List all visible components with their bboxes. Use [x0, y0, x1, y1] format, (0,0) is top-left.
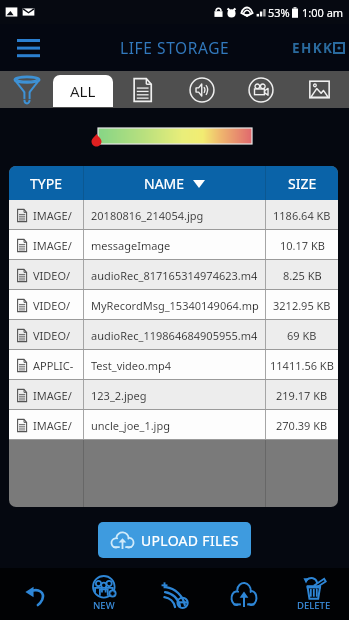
staticText: TYPE [30, 174, 62, 193]
button[interactable]: IMAGE/ [9, 200, 338, 230]
button[interactable]: Connect [139, 568, 209, 620]
staticText: 1186.64 KB [273, 208, 331, 223]
button[interactable]: VIDEO/ [9, 320, 338, 350]
staticText: EHKK [292, 39, 334, 57]
staticText: 10.17 KB [280, 238, 325, 253]
button[interactable]: Delete [279, 568, 349, 620]
button[interactable]: Filter [0, 71, 53, 108]
staticText: UPLOAD FILES [141, 531, 239, 550]
staticText: 270.39 KB [276, 418, 328, 433]
staticText: LIFE STORAGE [120, 37, 230, 58]
staticText: VIDEO/ [33, 298, 71, 313]
staticText: VIDEO/ [33, 328, 71, 343]
staticText: IMAGE/ [33, 208, 72, 223]
button[interactable]: APPLIC- [9, 350, 338, 380]
staticText: 20180816_214054.jpg [91, 208, 204, 223]
button[interactable]: New group [69, 568, 139, 620]
staticText: 219.17 KB [276, 388, 328, 403]
button[interactable]: IMAGE/ [9, 380, 338, 410]
staticText: DELETE [297, 599, 331, 612]
button[interactable]: NAME [84, 166, 265, 200]
staticText: 69 KB [287, 328, 317, 343]
staticText: messageImage [91, 238, 171, 253]
button[interactable]: UPLOAD FILES [98, 522, 251, 558]
staticText: 3212.95 KB [273, 298, 331, 313]
staticText: IMAGE/ [33, 388, 72, 403]
button[interactable]: VIDEO/ [9, 290, 338, 320]
staticText: 11411.56 KB [270, 358, 334, 373]
staticText: IMAGE/ [33, 418, 72, 433]
staticText: 53% [268, 5, 290, 20]
staticText: NAME [144, 174, 185, 193]
button[interactable]: IMAGE/ [9, 410, 338, 440]
staticText: IMAGE/ [33, 238, 72, 253]
button[interactable]: Ehkko logo [292, 39, 344, 57]
staticText: uncle_joe_1.jpg [91, 418, 170, 433]
button[interactable]: Menu [10, 30, 46, 66]
staticText: SIZE [288, 174, 317, 193]
button[interactable]: Audio [172, 71, 231, 108]
button[interactable]: Video [231, 71, 290, 108]
button[interactable]: Images [290, 71, 349, 108]
button[interactable]: Upload [209, 568, 279, 620]
staticText: 8.25 KB [283, 268, 322, 283]
staticText: 123_2.jpeg [91, 388, 147, 403]
staticText: APPLIC- [33, 358, 74, 373]
button[interactable]: Documents [113, 71, 172, 108]
staticText: Test_video.mp4 [91, 358, 172, 373]
staticText: audioRec_119864684905955.m4 [91, 328, 258, 343]
staticText: audioRec_817165314974623.m4 [91, 268, 258, 283]
button[interactable]: VIDEO/ [9, 260, 338, 290]
button[interactable]: Undo [0, 568, 69, 620]
staticText: NEW [93, 599, 115, 612]
button[interactable]: TYPE [9, 166, 83, 200]
staticText: VIDEO/ [33, 268, 71, 283]
staticText: 1:00 am [302, 5, 344, 20]
button[interactable]: SIZE [266, 166, 338, 200]
staticText: ALL [70, 81, 96, 101]
staticText: MyRecordMsg_15340149064.mp [91, 298, 259, 313]
button[interactable]: IMAGE/ [9, 230, 338, 260]
button[interactable]: ALL [53, 75, 113, 107]
